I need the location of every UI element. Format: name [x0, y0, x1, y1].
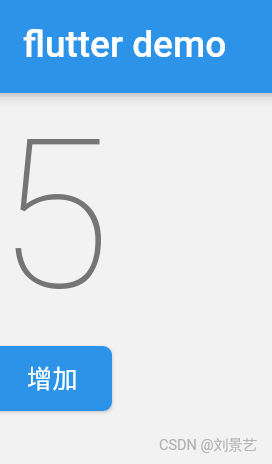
staticText: flutter demo: [23, 23, 227, 66]
staticText: 5: [0, 94, 111, 338]
staticText: CSDN @刘景艺: [159, 436, 258, 454]
staticText: 增加: [27, 359, 79, 395]
button[interactable]: 增加: [0, 346, 112, 411]
